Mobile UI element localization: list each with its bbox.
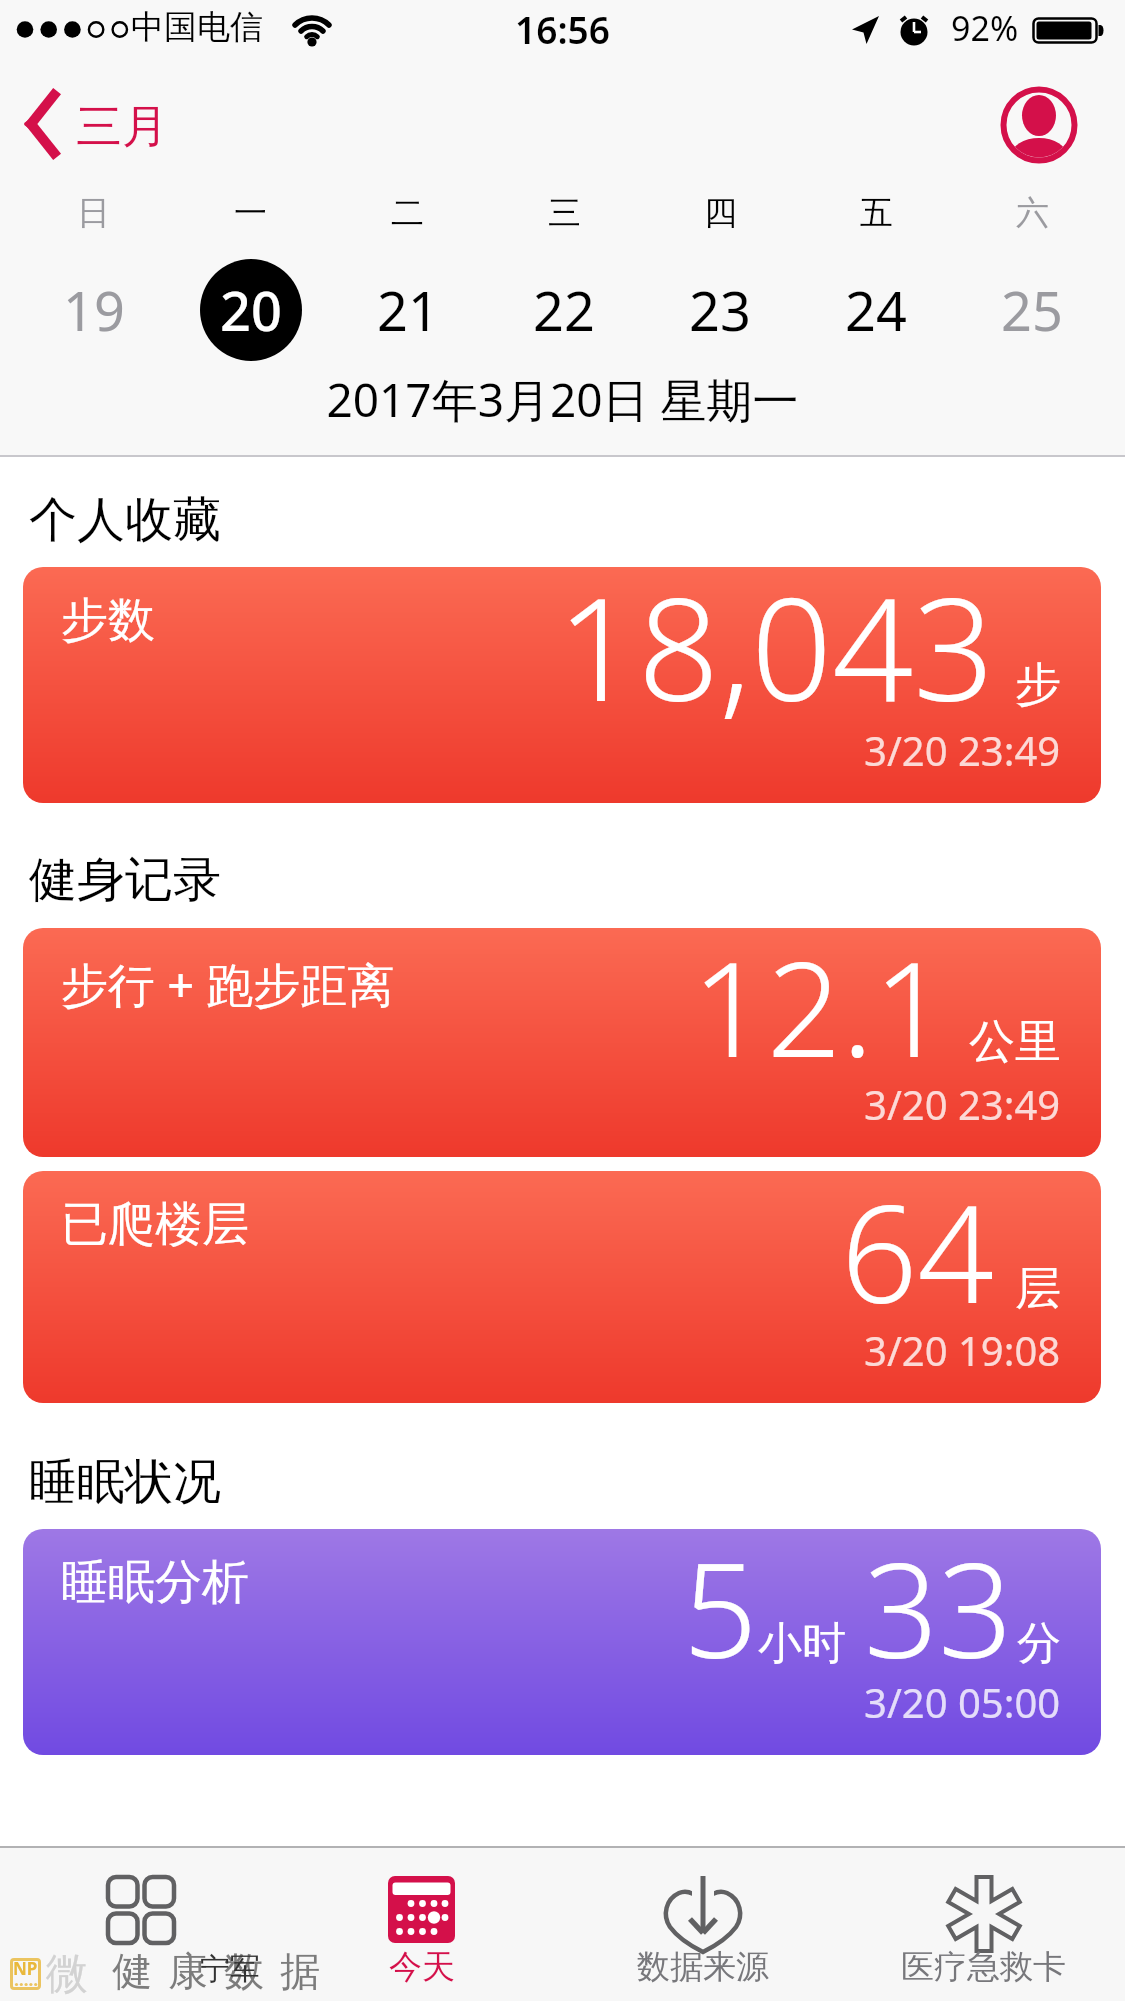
button[interactable]: 步数 — [23, 567, 1101, 803]
button[interactable]: 数据来源 — [562, 1848, 843, 2001]
button[interactable]: 医疗急救卡 — [843, 1848, 1124, 2001]
staticText: 12.1 — [692, 928, 949, 1095]
staticText: 二 — [391, 192, 424, 234]
staticText: 3/20 05:00 — [864, 1675, 1061, 1729]
button[interactable]: 19 — [15, 258, 172, 362]
staticText: 步行 + 跑步距离 — [61, 952, 395, 1016]
button[interactable] — [0, 1848, 281, 2001]
button[interactable]: 步行 + 跑步距离 — [23, 928, 1101, 1157]
staticText: 5 — [683, 1529, 758, 1696]
staticText: 19 — [63, 273, 125, 347]
staticText: NP — [13, 1957, 38, 1980]
staticText: 16:56 — [0, 4, 1125, 54]
staticText: 步 — [1015, 656, 1061, 714]
staticText: 小时 — [758, 1616, 846, 1671]
staticText: 五 — [860, 192, 893, 234]
staticText: 睡眠分析 — [61, 1553, 249, 1612]
button[interactable]: 今天 — [281, 1848, 562, 2001]
staticText: 个人收藏 — [29, 490, 221, 550]
staticText: 层 — [1015, 1260, 1061, 1318]
staticText: 睡眠状况 — [29, 1452, 221, 1512]
staticText: 23 — [689, 273, 751, 347]
staticText: 18,043 — [557, 567, 995, 742]
button[interactable]: 已爬楼层 — [23, 1171, 1101, 1403]
staticText: 三月 — [76, 98, 168, 156]
staticText: 健康数据 — [104, 1946, 328, 1996]
staticText: 今天 — [389, 1946, 455, 1988]
staticText: 日 — [77, 192, 110, 234]
staticText: 3/20 23:49 — [864, 723, 1061, 777]
staticText: 医疗急救卡 — [901, 1946, 1066, 1988]
staticText: 3/20 19:08 — [864, 1323, 1061, 1377]
staticText: 微 — [46, 1948, 88, 2001]
staticText: 中国电信 — [131, 6, 263, 48]
staticText: 3/20 23:49 — [864, 1077, 1061, 1131]
button[interactable]: 睡眠分析 — [23, 1529, 1101, 1755]
button[interactable] — [1000, 86, 1078, 164]
staticText: 公里 — [969, 1013, 1061, 1071]
button[interactable]: 三月 — [10, 80, 200, 170]
staticText: 六 — [1016, 192, 1049, 234]
staticText: 分 — [1017, 1616, 1061, 1671]
staticText: 21 — [377, 273, 439, 347]
staticText: 步数 — [61, 591, 155, 650]
staticText: 一 — [234, 192, 267, 234]
staticText: 64 — [841, 1171, 995, 1343]
staticText: 已爬楼层 — [61, 1195, 249, 1254]
staticText: 健身记录 — [29, 850, 221, 910]
button[interactable]: 23 — [642, 258, 798, 362]
staticText: 三 — [548, 192, 581, 234]
button[interactable]: 21 — [329, 258, 486, 362]
staticText: 24 — [845, 273, 907, 347]
button[interactable]: 22 — [486, 258, 642, 362]
button[interactable]: 20 — [172, 258, 329, 362]
staticText: 数据来源 — [637, 1946, 769, 1988]
staticText: 四 — [704, 192, 737, 234]
staticText: 20 — [220, 273, 282, 347]
staticText: 22 — [533, 273, 595, 347]
staticText: 25 — [1001, 273, 1063, 347]
staticText: 92% — [951, 5, 1019, 51]
button[interactable]: 24 — [798, 258, 954, 362]
staticText: 2017年3月20日 星期一 — [0, 368, 1125, 431]
staticText: 宁军 — [200, 1950, 260, 1988]
staticText: 33 — [864, 1529, 1013, 1696]
button[interactable]: 25 — [954, 258, 1110, 362]
